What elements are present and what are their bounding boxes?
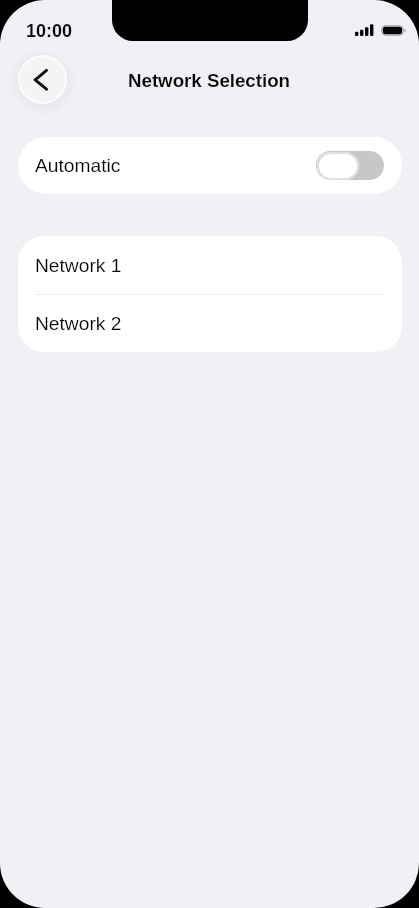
button[interactable]: Automatic — [18, 137, 402, 194]
staticText: Automatic — [35, 155, 121, 176]
staticText: Network 2 — [35, 313, 122, 334]
button[interactable]: Network 1 — [18, 236, 402, 294]
staticText: Network Selection — [128, 70, 291, 91]
button[interactable]: Back — [18, 55, 67, 104]
button[interactable]: Automatic — [316, 151, 384, 180]
staticText: 10:00 — [26, 21, 73, 41]
staticText: Network 1 — [35, 255, 122, 276]
button[interactable]: Network 2 — [18, 295, 402, 352]
